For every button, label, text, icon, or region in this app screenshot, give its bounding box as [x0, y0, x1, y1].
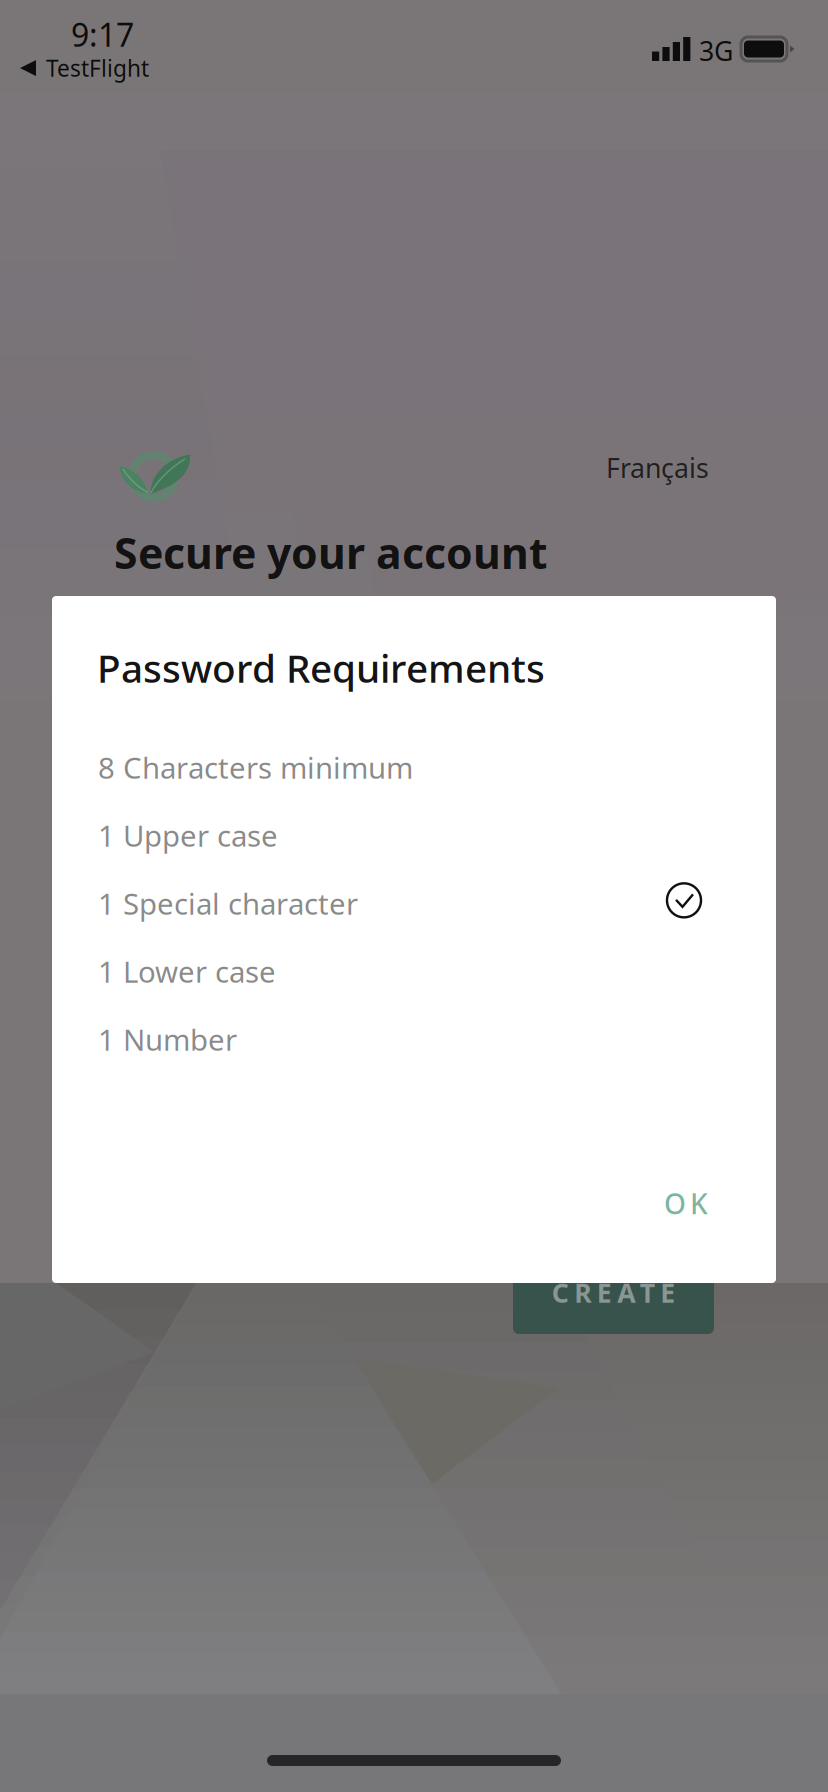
- button[interactable]: Français: [594, 438, 721, 497]
- staticText: 1 Number: [98, 1020, 237, 1059]
- staticText: 9:17: [71, 13, 134, 55]
- button[interactable]: CREATE: [513, 1251, 714, 1334]
- button[interactable]: OK: [638, 1167, 734, 1240]
- staticText: CREATE: [552, 1275, 675, 1310]
- staticText: 1 Special character: [98, 884, 358, 923]
- staticText: Français: [606, 450, 709, 485]
- staticText: 3G: [699, 33, 733, 68]
- staticText: 8 Characters minimum: [98, 748, 413, 787]
- button[interactable]: Back to TestFlight: [20, 53, 149, 83]
- staticText: 1 Upper case: [98, 816, 278, 855]
- staticText: TestFlight: [46, 53, 149, 83]
- staticText: OK: [664, 1185, 708, 1222]
- staticText: 1 Lower case: [98, 952, 276, 991]
- staticText: Secure your account: [114, 524, 548, 581]
- staticText: Password Requirements: [97, 642, 545, 693]
